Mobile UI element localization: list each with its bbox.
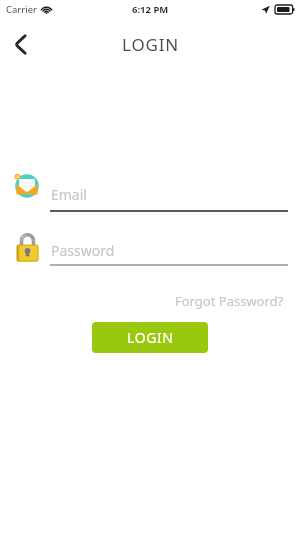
staticText: LOGIN: [127, 328, 174, 347]
button[interactable]: Forgot Password?: [173, 288, 286, 314]
staticText: Password: [51, 241, 115, 260]
staticText: Email: [51, 185, 87, 204]
button[interactable]: LOGIN: [92, 322, 208, 353]
staticText: LOGIN: [122, 33, 179, 56]
staticText: Forgot Password?: [175, 292, 284, 310]
button[interactable]: Back: [0, 24, 40, 64]
staticText: Carrier: [6, 3, 37, 16]
staticText: 6:12 PM: [132, 3, 169, 16]
